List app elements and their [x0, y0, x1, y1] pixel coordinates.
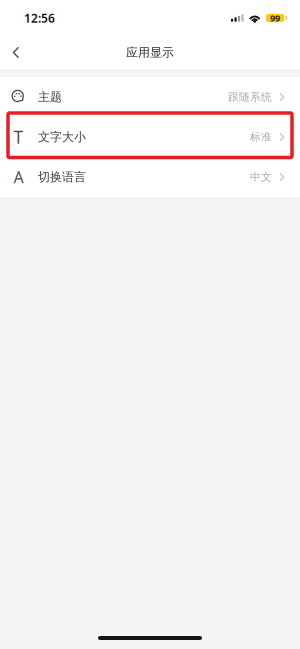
staticText: 99	[270, 12, 280, 24]
staticText: 应用显示	[126, 45, 174, 60]
staticText: 跟随系统	[228, 90, 272, 103]
staticText: T	[13, 125, 23, 148]
staticText: A	[13, 166, 23, 188]
staticText: 12:56	[24, 10, 55, 26]
staticText: 主题	[38, 90, 62, 104]
button[interactable]: Back	[0, 36, 32, 68]
button[interactable]: A	[0, 157, 300, 197]
staticText: 切换语言	[38, 170, 86, 184]
button[interactable]: T	[0, 117, 300, 157]
button[interactable]: 主题	[0, 77, 300, 117]
staticText: 标准	[250, 130, 272, 143]
staticText: 中文	[250, 170, 272, 183]
staticText: 文字大小	[38, 130, 86, 144]
